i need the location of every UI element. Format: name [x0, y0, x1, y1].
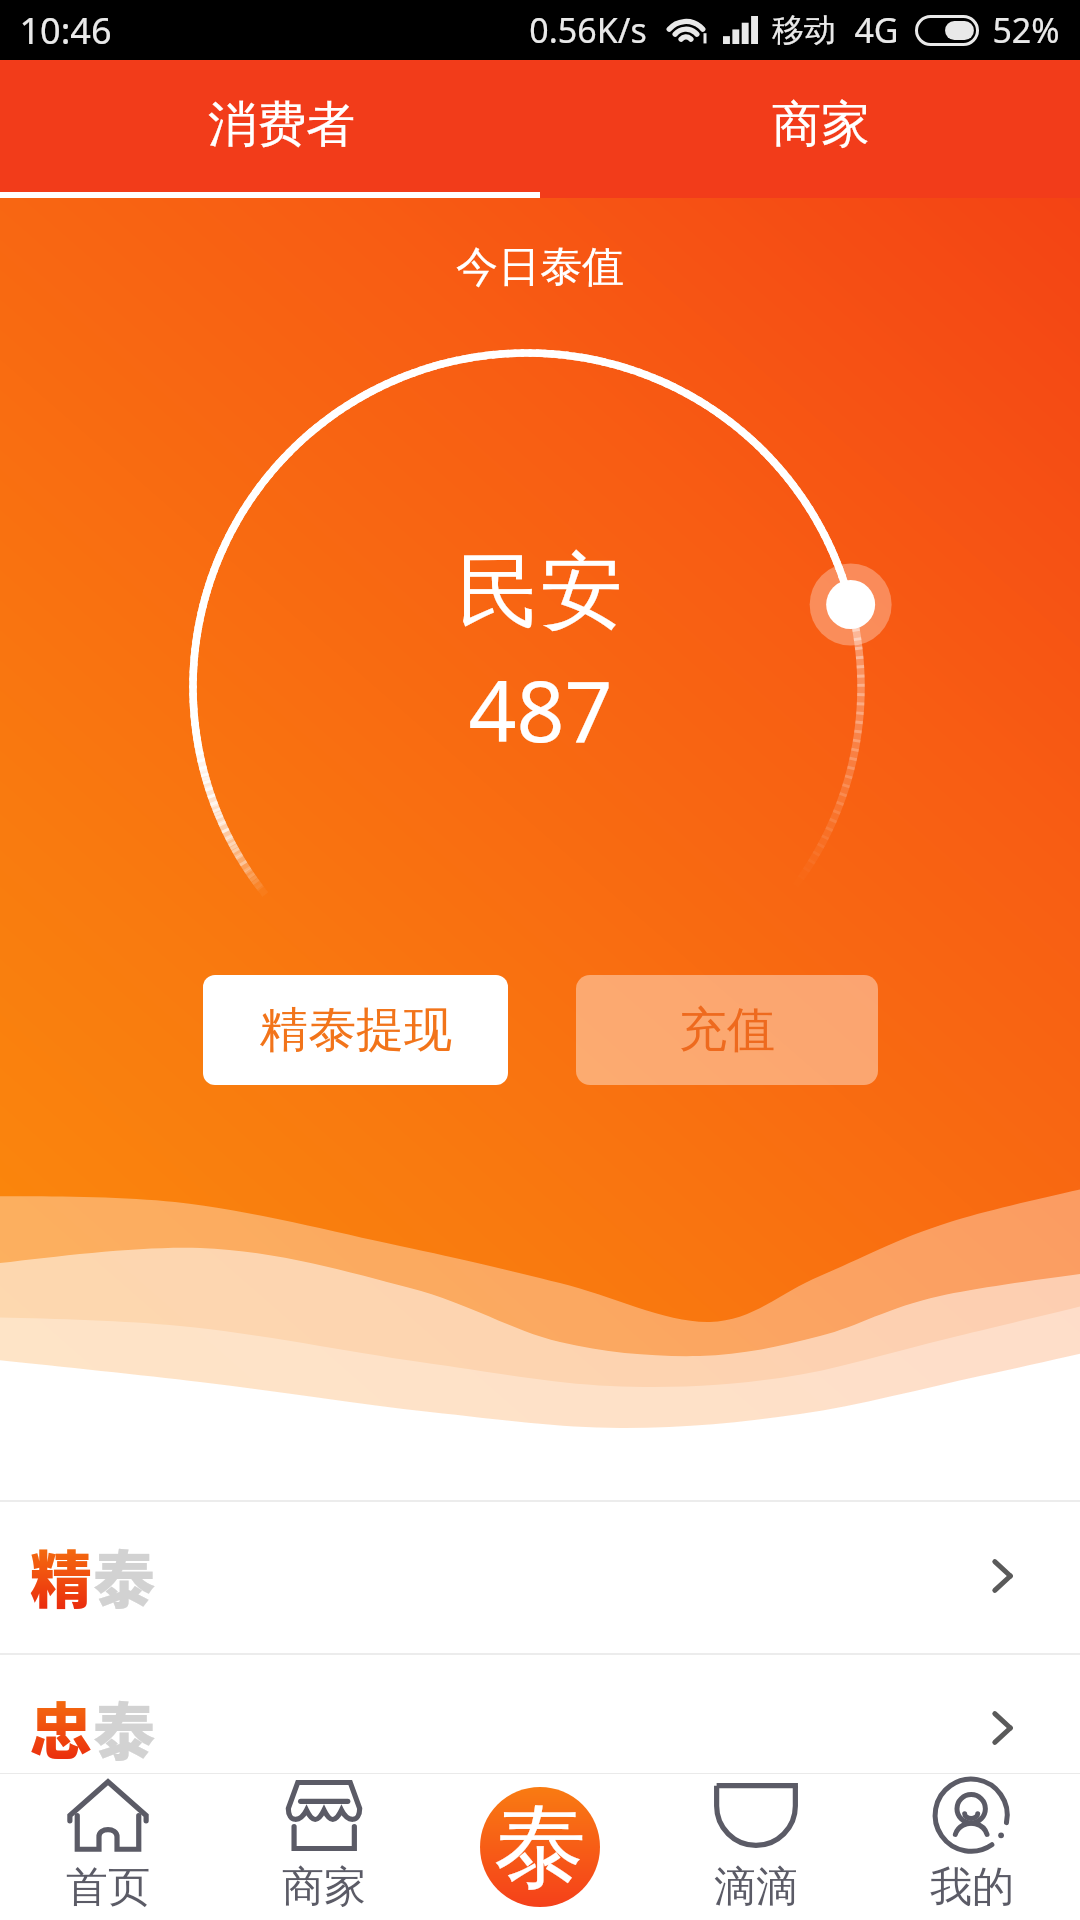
- button[interactable]: 滴滴: [648, 1773, 864, 1920]
- staticText: 首页: [66, 1861, 150, 1914]
- button[interactable]: 充值: [576, 975, 878, 1085]
- button[interactable]: 我的: [864, 1773, 1080, 1920]
- staticText: 487: [468, 652, 613, 766]
- staticText: 民安: [457, 540, 623, 645]
- staticText: 商家: [772, 94, 870, 156]
- staticText: 精泰提现: [260, 1000, 452, 1060]
- other: Open: [972, 1546, 1032, 1606]
- other: Open: [972, 1698, 1032, 1758]
- staticText: 泰: [93, 1531, 156, 1621]
- button[interactable]: 泰: [480, 1787, 600, 1907]
- staticText: 滴滴: [714, 1861, 798, 1914]
- staticText: 52%: [992, 7, 1060, 53]
- button[interactable]: 精泰提现: [203, 975, 508, 1085]
- staticText: 精: [30, 1531, 93, 1621]
- staticText: 消费者: [208, 94, 355, 156]
- staticText: 今日泰值: [456, 241, 624, 294]
- staticText: 商家: [282, 1861, 366, 1914]
- staticText: 泰: [494, 1789, 586, 1905]
- button[interactable]: 商家: [216, 1773, 432, 1920]
- staticText: 0.56K/s: [529, 7, 647, 53]
- button[interactable]: 商家: [540, 60, 1080, 198]
- staticText: 忠: [30, 1683, 93, 1773]
- staticText: 4G: [854, 7, 899, 53]
- button[interactable]: 忠: [0, 1655, 1080, 1773]
- button[interactable]: 消费者: [0, 60, 540, 198]
- staticText: 我的: [930, 1861, 1014, 1914]
- staticText: 泰: [93, 1683, 156, 1773]
- staticText: 充值: [679, 1000, 775, 1060]
- button[interactable]: 首页: [0, 1773, 216, 1920]
- staticText: 10:46: [19, 6, 112, 55]
- staticText: 移动: [772, 10, 836, 50]
- button[interactable]: 精: [0, 1502, 1080, 1653]
